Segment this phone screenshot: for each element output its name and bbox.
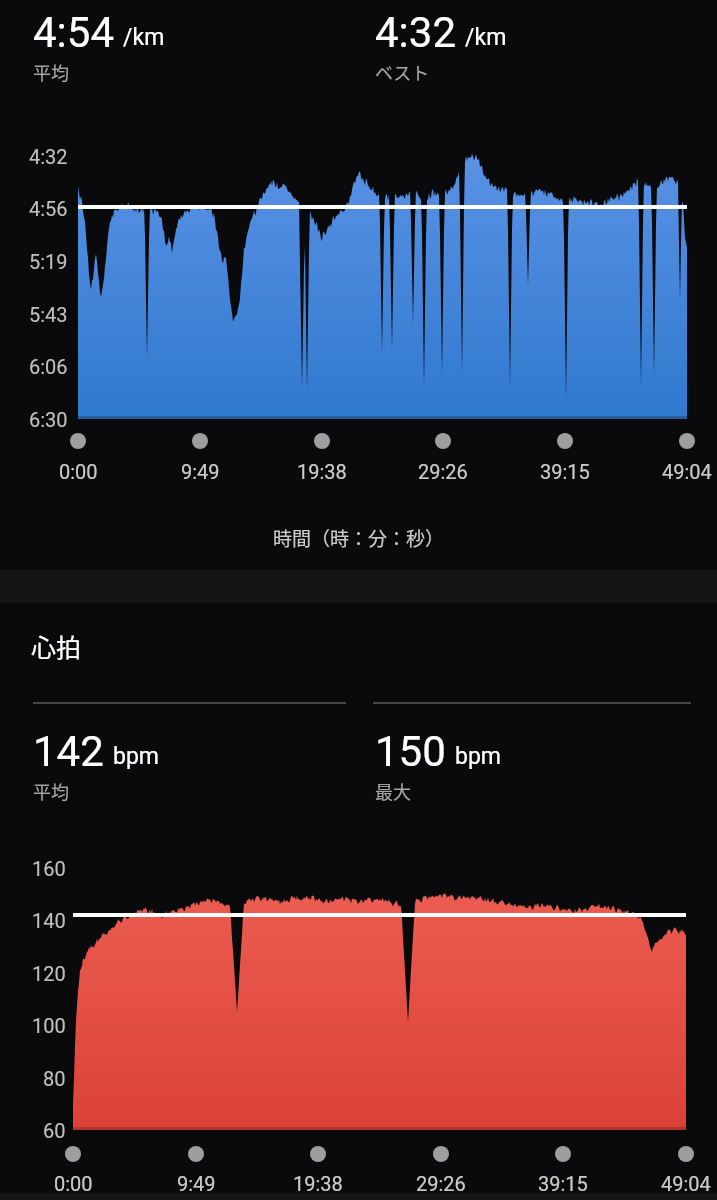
staticText: 最大 [375,778,411,804]
staticText: 100 [32,1014,66,1037]
staticText: 心拍 [31,628,82,664]
staticText: 平均 [33,59,69,85]
staticText: 9:49 [181,460,220,483]
staticText: 6:30 [29,408,68,431]
staticText: 4:32 [375,8,456,57]
staticText: 39:15 [538,1172,588,1195]
staticText: 49:04 [662,460,712,483]
staticText: 6:06 [29,355,68,378]
staticText: 19:38 [293,1172,343,1195]
staticText: 4:54 [33,8,114,57]
staticText: 60 [43,1119,66,1142]
staticText: 29:26 [416,1172,466,1195]
staticText: 160 [32,857,66,880]
staticText: 平均 [33,778,69,804]
staticText: 0:00 [54,1172,93,1195]
staticText: 時間（時：分：秒） [273,524,445,552]
staticText: 4:56 [29,197,68,220]
staticText: 39:15 [540,460,590,483]
staticText: 19:38 [297,460,347,483]
staticText: 142 [33,727,104,776]
staticText: ベスト [375,59,430,85]
staticText: 80 [43,1067,66,1090]
staticText: 4:32 [29,145,68,168]
staticText: 150 [375,727,446,776]
staticText: 49:04 [661,1172,711,1195]
staticText: 140 [32,909,66,932]
staticText: 120 [32,962,66,985]
staticText: 5:43 [29,303,68,326]
staticText: /km [465,24,507,51]
staticText: 29:26 [418,460,468,483]
staticText: bpm [113,743,159,770]
staticText: /km [123,24,165,51]
staticText: 9:49 [177,1172,216,1195]
staticText: 5:19 [29,250,68,273]
staticText: bpm [455,743,501,770]
staticText: 0:00 [59,460,98,483]
